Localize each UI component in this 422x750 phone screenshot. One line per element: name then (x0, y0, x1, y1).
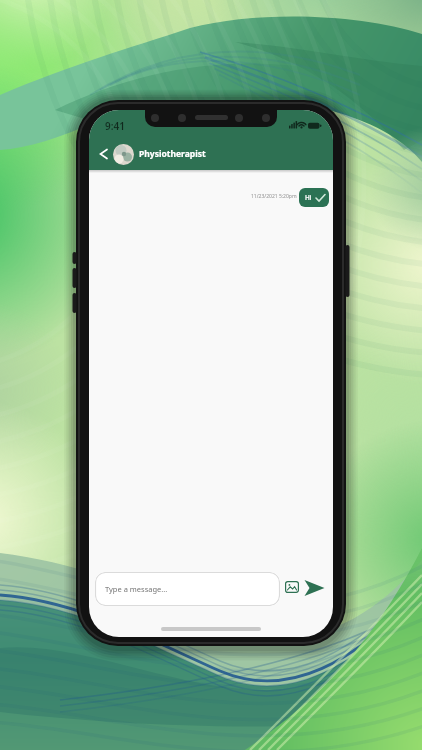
button[interactable] (304, 579, 325, 597)
staticText: Physiotherapist (139, 148, 206, 160)
button[interactable]: Type a message... (95, 572, 280, 606)
staticText: 11/23/2021 5:20pm (251, 193, 297, 200)
staticText: 9:41 (105, 119, 125, 133)
button[interactable] (285, 581, 299, 593)
staticText: Hi (305, 193, 312, 202)
staticText: Type a message... (105, 584, 168, 594)
button[interactable]: Physiotherapist (89, 138, 333, 170)
button[interactable]: Hi (299, 188, 329, 207)
